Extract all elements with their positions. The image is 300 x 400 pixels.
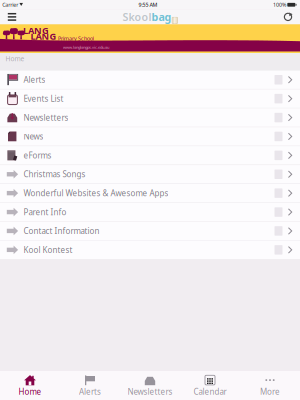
staticText: Primary School xyxy=(58,35,94,42)
staticText: LANG xyxy=(30,30,56,42)
button[interactable]: Menu xyxy=(2,10,22,23)
staticText: www.langlangps.vic.edu.au xyxy=(63,44,109,50)
staticText: Calendar xyxy=(193,386,226,397)
button[interactable]: Calendar xyxy=(180,370,240,400)
staticText: Skool xyxy=(122,10,151,24)
staticText: Home xyxy=(5,54,24,63)
button[interactable]: Christmas Songs xyxy=(0,165,300,184)
staticText: Alerts xyxy=(23,74,45,85)
button[interactable]: Home xyxy=(0,370,60,400)
button[interactable]: Events List xyxy=(0,89,300,108)
button[interactable]: Refresh xyxy=(278,10,298,23)
button[interactable]: Contact Information xyxy=(0,222,300,241)
staticText: Carrier xyxy=(2,1,18,8)
staticText: 9:55 AM xyxy=(138,1,157,8)
button[interactable]: Newsletters xyxy=(120,370,180,400)
button[interactable]: eForms xyxy=(0,146,300,165)
button[interactable]: Alerts xyxy=(0,71,300,89)
staticText: Alerts xyxy=(79,386,101,397)
button[interactable]: Wonderful Websites & Awesome Apps xyxy=(0,184,300,203)
button[interactable]: Parent Info xyxy=(0,203,300,222)
staticText: Newsletters xyxy=(127,386,172,397)
staticText: bag xyxy=(151,10,171,24)
button[interactable]: Newsletters xyxy=(0,108,300,127)
staticText: More xyxy=(260,386,280,397)
staticText: Contact Information xyxy=(23,226,99,236)
button[interactable]: More xyxy=(240,370,300,400)
staticText: Kool Kontest xyxy=(23,244,72,255)
button[interactable]: News xyxy=(0,127,300,146)
button[interactable]: Kool Kontest xyxy=(0,241,300,260)
staticText: 100% xyxy=(273,1,286,8)
staticText: LANG xyxy=(23,24,49,37)
button[interactable]: Alerts xyxy=(60,370,120,400)
staticText: Parent Info xyxy=(23,207,66,217)
staticText: eForms xyxy=(23,150,51,161)
staticText: Wonderful Websites & Awesome Apps xyxy=(23,188,168,198)
staticText: Newsletters xyxy=(23,112,68,123)
staticText: Home xyxy=(18,386,41,397)
staticText: News xyxy=(23,131,43,142)
staticText: Christmas Songs xyxy=(23,169,85,179)
staticText: Events List xyxy=(23,93,63,104)
